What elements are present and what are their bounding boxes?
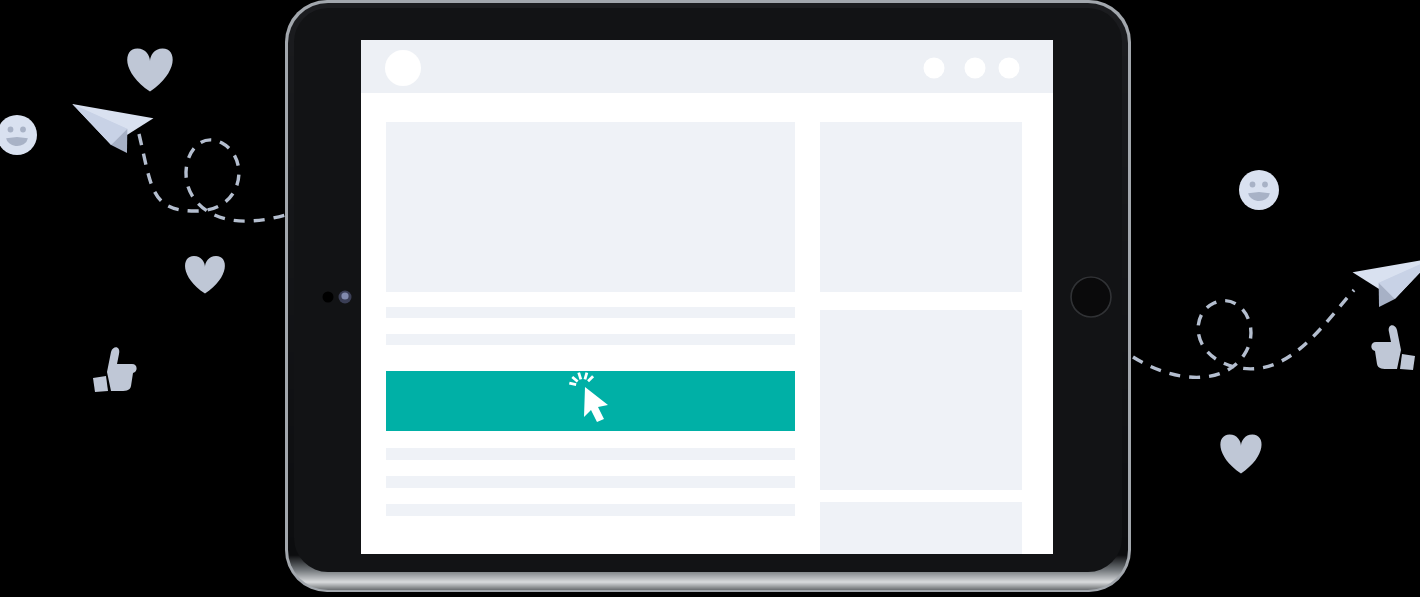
button[interactable]: Notifications (964, 57, 986, 79)
button[interactable]: Options (923, 57, 945, 79)
button[interactable]: Continue (386, 371, 795, 431)
button[interactable]: Profile avatar (385, 50, 422, 87)
button[interactable]: Home (1071, 277, 1112, 318)
button[interactable]: More (998, 57, 1020, 79)
